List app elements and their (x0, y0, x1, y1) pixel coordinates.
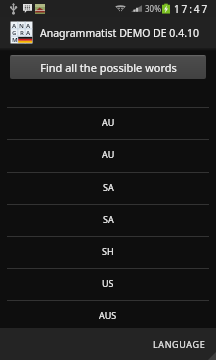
button[interactable]: Find all the possible words (10, 55, 206, 79)
other: Wi-Fi (115, 4, 126, 13)
staticText: SA (103, 181, 114, 193)
button[interactable]: SA (0, 172, 216, 204)
button[interactable]: SA (0, 204, 216, 236)
button[interactable]: AUS (0, 300, 216, 328)
staticText: R (20, 29, 24, 36)
staticText: SA (103, 213, 114, 225)
other: Photo notification (35, 4, 45, 14)
staticText: SH (102, 245, 114, 257)
staticText: A (26, 22, 31, 29)
button[interactable]: AU (0, 107, 216, 139)
staticText: G (12, 29, 17, 36)
button[interactable]: LANGUAGE (143, 328, 216, 360)
staticText: AU (102, 148, 115, 160)
button[interactable]: AU (0, 139, 216, 172)
staticText: 17:47 (174, 2, 210, 16)
other: Mobile signal (131, 4, 142, 13)
staticText: US (102, 277, 114, 289)
button[interactable]: SH (0, 236, 216, 268)
staticText: AUS (99, 309, 117, 321)
staticText: 30% (145, 3, 161, 14)
button[interactable]: US (0, 268, 216, 300)
staticText: N (19, 22, 24, 29)
other: Messages (23, 4, 32, 13)
other: USB connected (10, 3, 17, 15)
other: Battery charging (162, 3, 170, 14)
staticText: A (12, 22, 17, 29)
staticText: AU (102, 116, 115, 128)
staticText: M (12, 36, 18, 43)
staticText: Anagrammatist DEMO DE 0.4.10 (40, 26, 199, 40)
other: Anagrammatist (10, 21, 33, 44)
staticText: Find all the possible words (40, 60, 177, 75)
staticText: LANGUAGE (153, 338, 206, 350)
staticText: A (26, 29, 31, 36)
